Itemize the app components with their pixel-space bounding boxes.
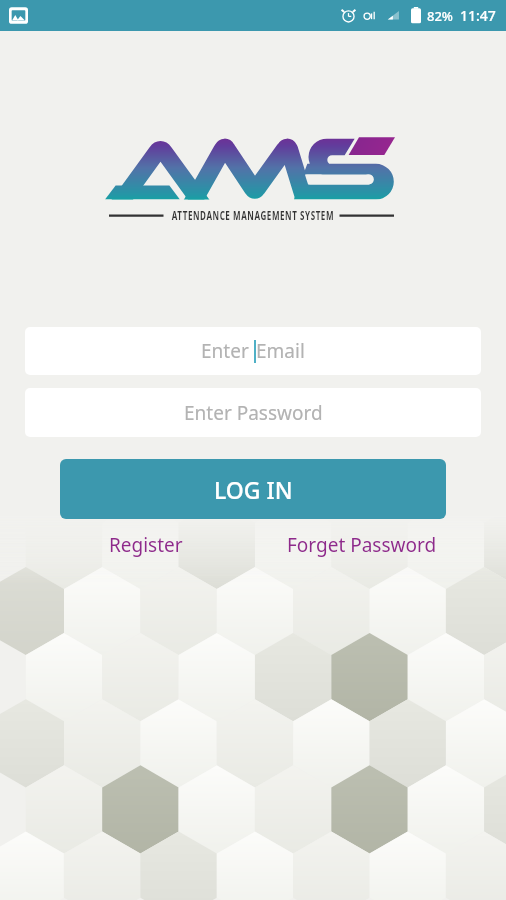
button[interactable]: Enter bbox=[25, 327, 481, 375]
staticText: 82% bbox=[427, 7, 453, 25]
button[interactable]: Forget Password bbox=[261, 528, 462, 562]
button[interactable]: Register bbox=[65, 528, 226, 562]
staticText: 11:47 bbox=[460, 6, 496, 25]
staticText: LOG IN bbox=[214, 474, 293, 505]
other: Screenshot saved bbox=[9, 6, 28, 25]
staticText: Email bbox=[256, 338, 305, 364]
staticText: ATTENDANCE MANAGEMENT SYSTEM bbox=[172, 208, 334, 224]
staticText: Enter Password bbox=[184, 400, 323, 426]
button[interactable]: Enter Password bbox=[25, 388, 481, 437]
staticText: Register bbox=[109, 532, 183, 558]
staticText: Forget Password bbox=[287, 532, 437, 558]
staticText: Enter bbox=[201, 338, 254, 364]
button[interactable]: LOG IN bbox=[60, 459, 446, 519]
